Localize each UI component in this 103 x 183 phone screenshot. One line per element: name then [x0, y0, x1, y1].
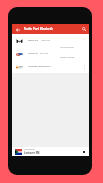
staticText: Algoa FM	[28, 52, 38, 55]
button[interactable]: Add to Favorite	[56, 42, 89, 52]
staticText: Radio Port Elizabeth	[24, 27, 53, 31]
staticText: Lecturer FM	[24, 151, 40, 155]
button[interactable]: Metro FM	[12, 34, 89, 47]
staticText: Metro FM	[28, 39, 39, 42]
button[interactable]: More options	[81, 38, 87, 44]
staticText: Umhlobo Wenene FM	[28, 65, 51, 68]
staticText: Now Playing	[24, 148, 35, 150]
button[interactable]: Algoa FM	[12, 47, 89, 60]
button[interactable]: Now Playing	[12, 147, 89, 156]
button[interactable]: More options	[81, 64, 87, 70]
button[interactable]: Back	[14, 26, 21, 33]
button[interactable]: Search	[80, 25, 88, 33]
button[interactable]: Share to Friends	[56, 52, 89, 62]
staticText: 106.0 FM	[41, 39, 51, 42]
staticText: Add to Favorite	[60, 46, 74, 49]
button[interactable]: Stop	[81, 149, 87, 155]
staticText: 94.0 FM	[40, 52, 49, 55]
button[interactable]: Umhlobo Wenene FM	[12, 60, 89, 73]
staticText: Share to Friends	[60, 56, 75, 59]
